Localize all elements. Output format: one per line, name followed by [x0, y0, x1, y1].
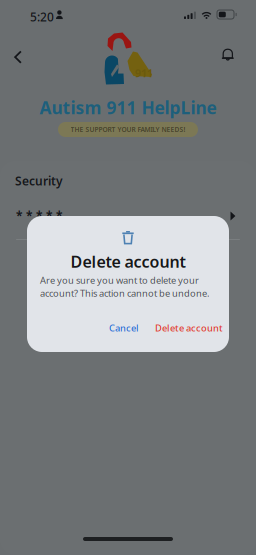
button[interactable]: Notifications [214, 40, 242, 68]
staticText: THE SUPPORT YOUR FAMILY NEEDS! [70, 125, 185, 134]
staticText: Cancel [109, 322, 139, 334]
button[interactable]: Back [4, 43, 32, 71]
staticText: * * * * * [16, 208, 63, 224]
staticText: account? This action cannot be undone. [40, 287, 210, 299]
staticText: 911 [135, 66, 153, 80]
staticText: Delete account [70, 251, 185, 272]
staticText: Delete account [155, 322, 223, 334]
staticText: Security [15, 173, 63, 189]
button[interactable]: Delete account [152, 319, 226, 337]
staticText: 5:20 [30, 9, 54, 25]
button[interactable]: Cancel [103, 319, 145, 337]
staticText: Autism 911 HelpLine [39, 96, 216, 119]
staticText: Are you sure you want to delete your [40, 274, 199, 286]
button[interactable]: * * * * * [0, 206, 256, 236]
